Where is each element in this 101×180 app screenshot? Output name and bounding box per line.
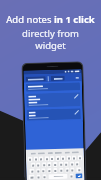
button[interactable]: Select widget <box>26 76 46 82</box>
button[interactable]: Note action <box>75 110 79 114</box>
button[interactable]: Key <box>53 162 57 167</box>
button[interactable]: Key <box>75 161 79 166</box>
button[interactable]: Key <box>50 156 54 161</box>
button[interactable]: Key <box>28 157 32 162</box>
staticText: directly from widget <box>6 27 95 51</box>
button[interactable]: Note action <box>26 92 81 108</box>
button[interactable]: Key <box>65 168 69 173</box>
button[interactable]: Key <box>36 174 40 179</box>
button[interactable]: Key <box>59 168 63 173</box>
button[interactable]: Key <box>36 168 40 173</box>
button[interactable]: Key <box>28 175 34 180</box>
button[interactable]: Key <box>56 156 60 161</box>
button[interactable]: Key <box>70 167 74 173</box>
button[interactable]: Key <box>41 168 45 173</box>
staticText: Add notes in 1 click <box>6 13 95 26</box>
button[interactable]: Key <box>70 161 74 167</box>
button[interactable]: Key <box>36 162 40 167</box>
button[interactable]: Key <box>47 162 51 167</box>
button[interactable]: Key <box>67 155 71 161</box>
button[interactable]: Key <box>64 162 68 167</box>
button[interactable]: Key <box>29 169 34 174</box>
button[interactable]: Key <box>39 156 43 161</box>
button[interactable]: Key <box>69 173 73 179</box>
button[interactable]: Key <box>31 162 35 168</box>
button[interactable]: More options <box>75 75 80 80</box>
button[interactable]: Key <box>42 174 46 179</box>
button[interactable]: Note action <box>27 108 81 121</box>
button[interactable]: Key <box>59 162 63 167</box>
button[interactable]: Key <box>47 168 51 173</box>
button[interactable]: Key <box>45 156 49 161</box>
button[interactable]: Note action <box>74 94 78 98</box>
button[interactable]: Space <box>48 174 67 179</box>
button[interactable]: Key <box>42 162 46 167</box>
button[interactable]: Key <box>72 155 76 160</box>
button[interactable] <box>26 82 80 92</box>
button[interactable]: Key <box>61 156 65 161</box>
button[interactable]: Key <box>76 167 81 172</box>
button[interactable]: Key <box>78 155 82 160</box>
button[interactable]: Key <box>34 156 38 162</box>
button[interactable]: Enter <box>75 173 82 178</box>
button[interactable]: Key <box>53 168 57 173</box>
button[interactable]: Sort order <box>51 76 65 81</box>
